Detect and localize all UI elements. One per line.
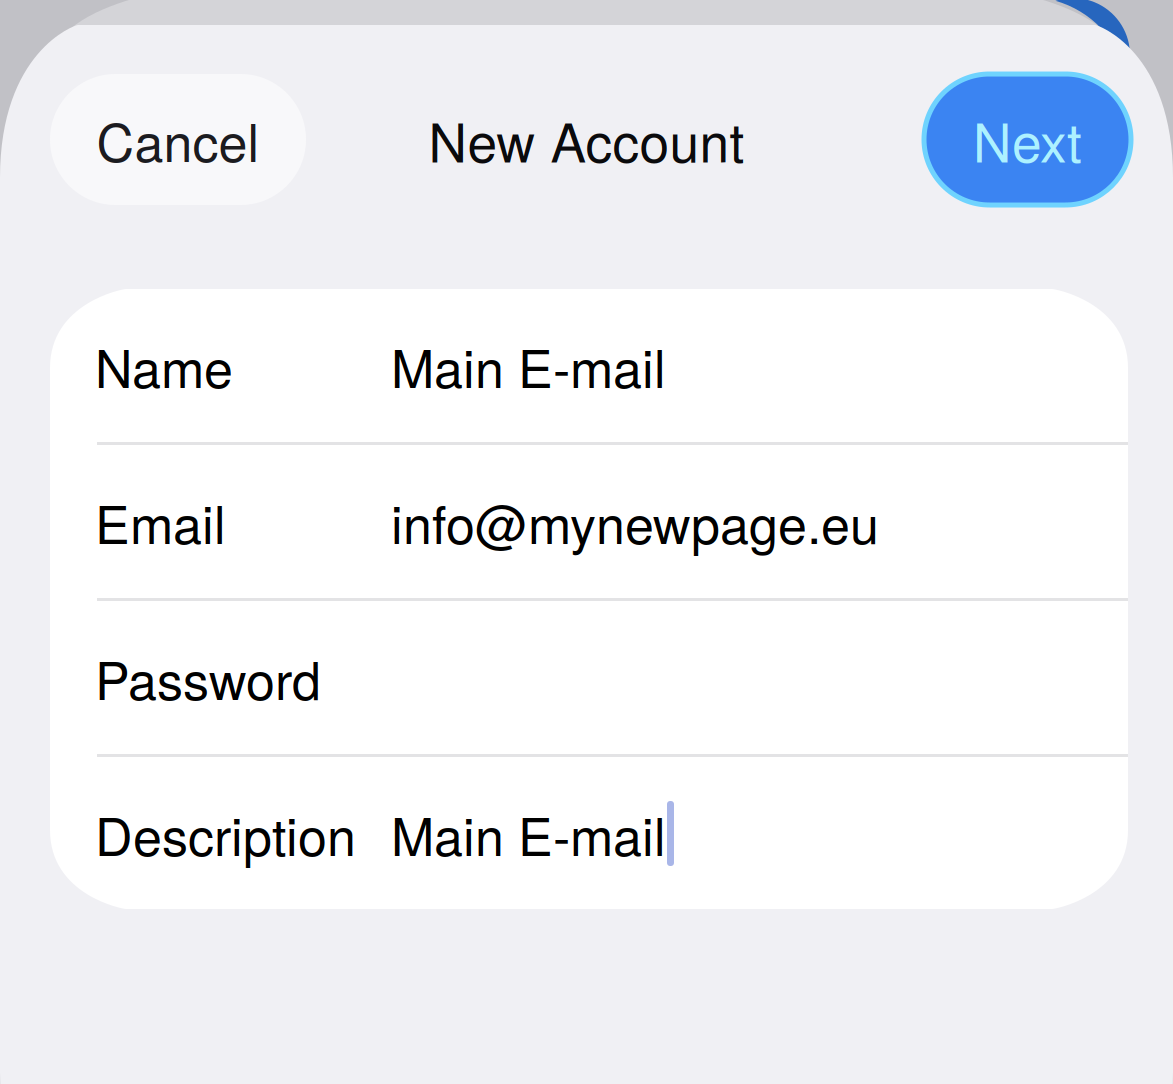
button[interactable]: Cancel — [50, 74, 306, 205]
button[interactable]: Next — [924, 74, 1131, 205]
staticText: info@mynewpage.eu — [391, 484, 879, 559]
staticText: Description — [95, 796, 356, 871]
staticText: Cancel — [96, 102, 259, 177]
staticText: Name — [95, 328, 233, 403]
staticText: New Account — [428, 101, 744, 178]
staticText: Email — [95, 484, 226, 559]
staticText: Main E-mail — [391, 796, 666, 871]
staticText: Password — [95, 640, 321, 715]
staticText: Main E-mail — [391, 328, 666, 403]
staticText: Next — [973, 101, 1082, 178]
